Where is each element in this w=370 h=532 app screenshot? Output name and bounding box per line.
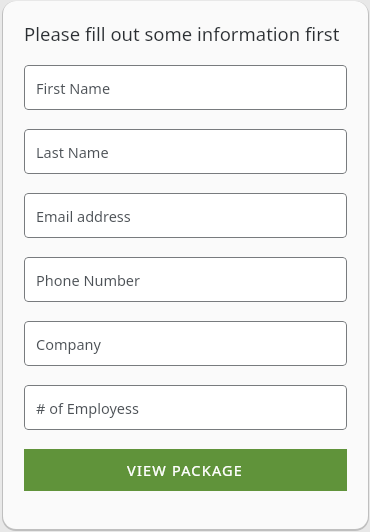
staticText: VIEW PACKAGE xyxy=(127,460,244,480)
staticText: First Name xyxy=(36,78,111,98)
staticText: Phone Number xyxy=(36,270,141,290)
button[interactable]: # of Employess xyxy=(24,385,347,430)
button[interactable]: Phone Number xyxy=(24,257,347,302)
button[interactable]: Company xyxy=(24,321,347,366)
button[interactable]: VIEW PACKAGE xyxy=(24,449,347,491)
staticText: # of Employess xyxy=(36,398,139,418)
staticText: Please fill out some information first xyxy=(24,21,340,46)
button[interactable]: Email address xyxy=(24,193,347,238)
staticText: Email address xyxy=(36,206,131,226)
button[interactable]: Last Name xyxy=(24,129,347,174)
button[interactable]: First Name xyxy=(24,65,347,110)
staticText: Company xyxy=(36,334,101,354)
staticText: Last Name xyxy=(36,142,109,162)
